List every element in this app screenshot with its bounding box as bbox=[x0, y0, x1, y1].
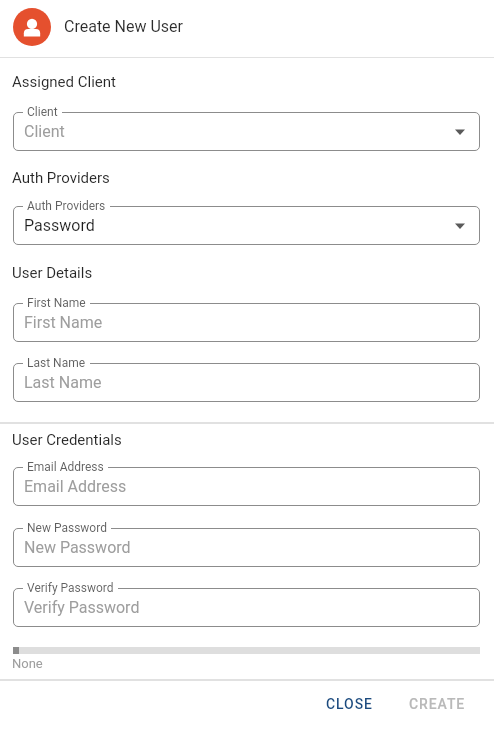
staticText: Auth Providers bbox=[12, 169, 110, 187]
button[interactable]: Client bbox=[13, 112, 480, 151]
staticText: Last Name bbox=[24, 373, 102, 392]
staticText: None bbox=[12, 656, 43, 671]
staticText: CREATE bbox=[409, 696, 466, 712]
staticText: Client bbox=[27, 105, 58, 119]
staticText: User Credentials bbox=[12, 431, 122, 449]
staticText: Client bbox=[24, 122, 65, 141]
staticText: Email Address bbox=[24, 477, 127, 496]
staticText: Verify Password bbox=[27, 581, 114, 595]
staticText: Verify Password bbox=[24, 598, 140, 617]
staticText: First Name bbox=[27, 296, 86, 310]
staticText: Assigned Client bbox=[12, 73, 116, 91]
button[interactable]: Password bbox=[13, 206, 480, 245]
staticText: Last Name bbox=[27, 356, 86, 370]
staticText: Create New User bbox=[64, 17, 183, 36]
staticText: CLOSE bbox=[326, 696, 373, 712]
button[interactable]: New Password bbox=[13, 528, 480, 567]
button[interactable]: Email Address bbox=[13, 467, 480, 506]
staticText: Password bbox=[24, 216, 95, 235]
staticText: Email Address bbox=[27, 460, 104, 474]
staticText: New Password bbox=[27, 521, 107, 535]
staticText: Auth Providers bbox=[27, 199, 106, 213]
button[interactable]: CLOSE bbox=[314, 687, 385, 721]
staticText: User Details bbox=[12, 264, 93, 282]
button[interactable]: Verify Password bbox=[13, 588, 480, 627]
button[interactable]: Last Name bbox=[13, 363, 480, 402]
staticText: New Password bbox=[24, 538, 131, 557]
staticText: First Name bbox=[24, 313, 103, 332]
button[interactable]: CREATE bbox=[397, 687, 478, 721]
button[interactable]: First Name bbox=[13, 303, 480, 342]
